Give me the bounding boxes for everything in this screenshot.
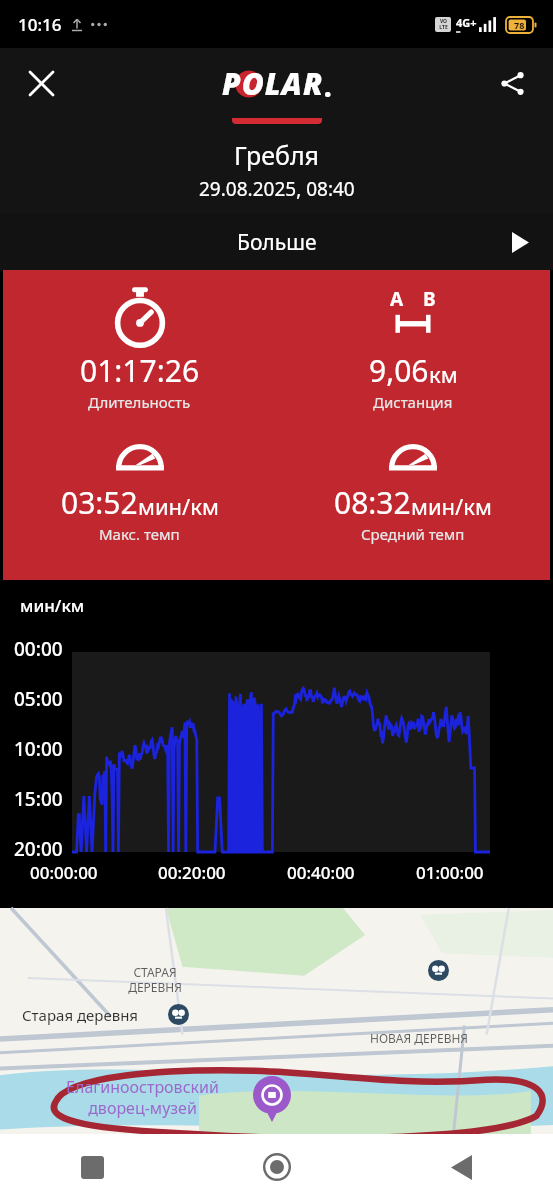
staticText: НОВАЯ ДЕРЕВНЯ [370, 1030, 469, 1046]
staticText: Дистанция [373, 392, 453, 412]
staticText: 08:32 [334, 482, 411, 523]
staticText: POLAR [222, 63, 324, 104]
staticText: Елагиноостровский дворец-музей [66, 1076, 219, 1119]
staticText: 00:00 [14, 636, 63, 662]
staticText: 10:16 [18, 13, 62, 36]
staticText: 00:00:00 [30, 861, 98, 884]
staticText: км [429, 359, 458, 389]
staticText: 00:20:00 [158, 861, 226, 884]
button[interactable]: Back [369, 1134, 553, 1200]
staticText: 78 [514, 19, 525, 31]
button[interactable]: 01:17:26 [3, 286, 276, 412]
staticText: Старая деревня [22, 1005, 139, 1025]
button[interactable]: Share [485, 56, 539, 110]
staticText: Средний темп [361, 524, 465, 544]
staticText: B [423, 286, 436, 312]
staticText: 03:52 [61, 482, 138, 523]
staticText: VO LTE [439, 18, 448, 31]
staticText: 05:00 [14, 686, 63, 712]
button[interactable]: A [276, 286, 550, 412]
staticText: Макс. темп [99, 524, 180, 544]
staticText: . [324, 69, 332, 104]
staticText: мин/км [411, 491, 492, 521]
staticText: Длительность [88, 392, 191, 412]
staticText: мин/км [20, 594, 85, 617]
button[interactable]: Close [14, 56, 68, 110]
staticText: 01:00:00 [416, 861, 484, 884]
button[interactable]: 03:52 [3, 432, 276, 544]
staticText: 20:00 [14, 836, 63, 862]
staticText: 15:00 [14, 786, 63, 812]
staticText: 4G+ [456, 15, 477, 30]
staticText: 29.08.2025, 08:40 [199, 176, 355, 202]
staticText: СТАРАЯ ДЕРЕВНЯ [128, 964, 182, 995]
button[interactable]: Больше [0, 214, 553, 270]
button[interactable]: Recents [0, 1134, 185, 1200]
staticText: A [390, 286, 404, 312]
staticText: 01:17:26 [80, 350, 200, 391]
staticText: 10:00 [14, 736, 63, 762]
staticText: Гребля [234, 138, 319, 172]
staticText: 9,06 [369, 350, 429, 391]
staticText: 00:40:00 [287, 861, 355, 884]
button[interactable]: 08:32 [276, 432, 550, 544]
staticText: мин/км [138, 491, 219, 521]
staticText: Больше [237, 228, 317, 257]
button[interactable]: Home [185, 1134, 369, 1200]
